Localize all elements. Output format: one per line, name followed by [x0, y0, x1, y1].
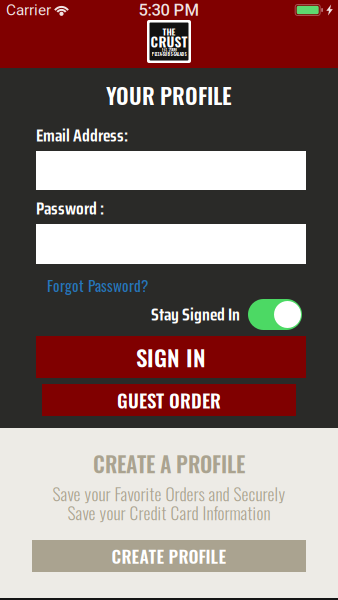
staticText: Save your Favorite Orders and Securely	[52, 481, 285, 506]
staticText: Forgot Password?	[47, 274, 148, 296]
button[interactable]: GUEST ORDER	[42, 384, 296, 416]
staticText: Password :	[36, 195, 104, 222]
staticText: GUEST ORDER	[117, 386, 221, 414]
staticText: THE	[162, 25, 175, 38]
staticText: Stay Signed In	[151, 301, 240, 328]
staticText: CREATE A PROFILE	[93, 448, 245, 479]
staticText: Email Address:	[36, 122, 128, 149]
staticText: YOUR PROFILE	[106, 79, 232, 111]
staticText: Carrier	[6, 1, 51, 19]
button[interactable]: SIGN IN	[36, 336, 306, 378]
button[interactable]: CREATE PROFILE	[32, 540, 306, 572]
staticText: CRUST	[150, 32, 187, 51]
staticText: Est. 2009	[161, 46, 176, 53]
staticText: Save your Credit Card Information	[67, 500, 270, 525]
staticText: SIGN IN	[136, 340, 206, 374]
staticText: PIZZA-SUBS-SALADS	[151, 51, 186, 57]
button[interactable]: Forgot Password?	[36, 264, 148, 293]
button[interactable]: Stay Signed In	[151, 299, 302, 330]
staticText: CREATE PROFILE	[111, 543, 226, 569]
staticText: 5:30 PM	[138, 0, 199, 20]
